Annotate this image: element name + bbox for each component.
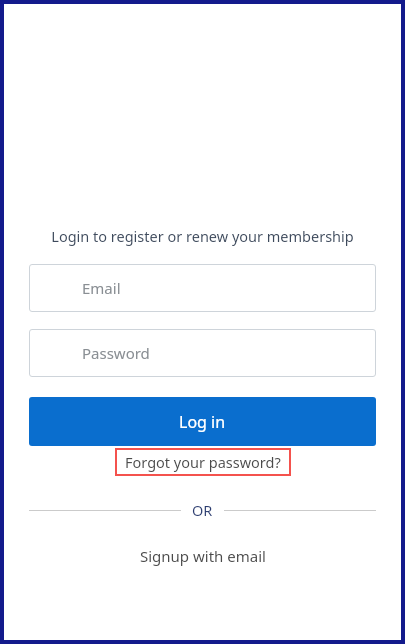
staticText: Password bbox=[82, 343, 150, 363]
staticText: Forgot your password? bbox=[125, 452, 281, 472]
staticText: Email bbox=[82, 278, 121, 298]
staticText: Login to register or renew your membersh… bbox=[29, 226, 376, 246]
staticText: OR bbox=[192, 500, 213, 520]
button[interactable]: Log in bbox=[29, 397, 376, 446]
button[interactable]: Email bbox=[29, 264, 376, 312]
staticText: Signup with email bbox=[140, 546, 266, 566]
button[interactable]: Forgot your password? bbox=[115, 448, 291, 476]
staticText: Log in bbox=[179, 411, 226, 433]
button[interactable]: Signup with email bbox=[29, 546, 376, 566]
button[interactable]: Password bbox=[29, 329, 376, 377]
